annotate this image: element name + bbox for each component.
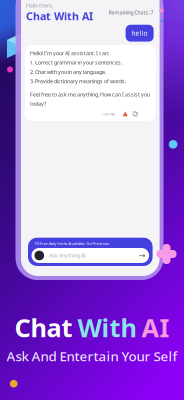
button[interactable]: 10 Free daily limits Available. Go Premi… <box>28 238 153 266</box>
staticText: hello <box>132 29 148 38</box>
staticText: AI <box>141 311 169 344</box>
staticText: 1. Correct grammar in your sentences. <box>30 59 122 66</box>
staticText: Remaining Chats: 7 <box>109 9 154 16</box>
staticText: Hello! I'm your AI assistant. I can: <box>30 50 109 57</box>
staticText: Hello there, <box>26 2 53 9</box>
staticText: With <box>77 311 136 344</box>
staticText: Ask And Entertain Your Self <box>6 347 177 365</box>
staticText: 3. Provide dictionary meanings of words. <box>30 78 126 85</box>
staticText: → <box>139 251 146 260</box>
staticText: today? <box>30 100 46 107</box>
staticText: 1:04 PM <box>102 111 116 117</box>
staticText: 2. Chat with you in any language. <box>30 68 106 75</box>
staticText: Ask Anything AI <box>49 252 86 259</box>
staticText: Chat With AI <box>26 9 93 23</box>
staticText: Feel free to ask me anything. How can I … <box>30 91 150 98</box>
staticText: 10 Free daily limits Available. Go Premi… <box>34 241 109 246</box>
staticText: Chat <box>14 311 72 344</box>
